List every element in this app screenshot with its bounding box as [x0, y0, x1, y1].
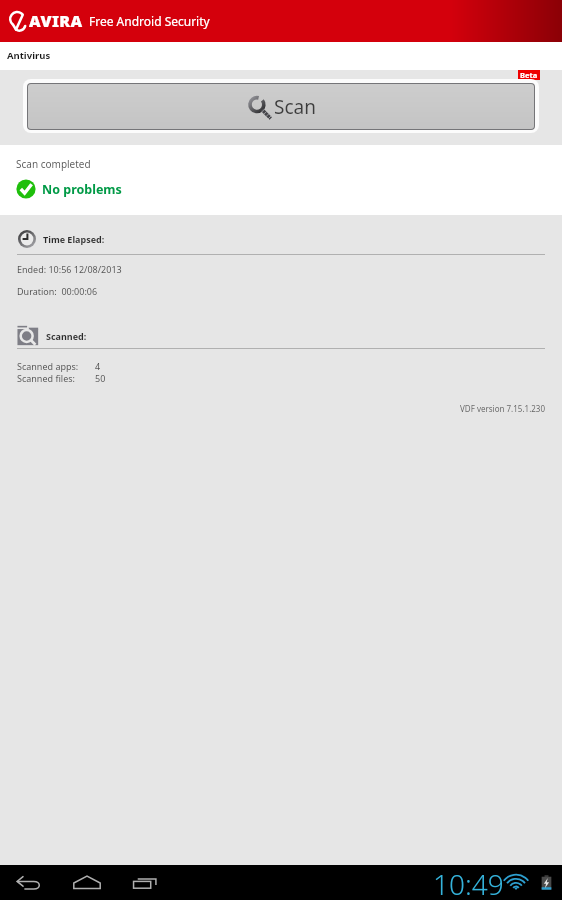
staticText: 10:49 — [433, 865, 504, 900]
staticText: 50 — [95, 372, 106, 384]
staticText: VDF version 7.15.1.230 — [0, 403, 545, 414]
staticText: Scanned: — [46, 330, 87, 342]
staticText: Scan completed — [16, 157, 91, 171]
staticText: Time Elapsed: — [43, 233, 105, 245]
staticText: Ended: 10:56 12/08/2013 — [17, 263, 122, 275]
staticText: Antivirus — [7, 49, 51, 62]
staticText: 4 — [95, 360, 101, 372]
staticText: No problems — [42, 181, 122, 198]
staticText: Free Android Security — [89, 13, 210, 29]
staticText: AVIRA — [29, 10, 83, 32]
button[interactable]: Back — [0, 865, 58, 900]
staticText: Scanned files: — [17, 372, 75, 384]
button[interactable]: Scan — [27, 83, 535, 130]
staticText: Scan — [274, 94, 316, 120]
button[interactable]: Home — [58, 865, 116, 900]
staticText: Beta — [520, 70, 538, 80]
staticText: Duration: 00:00:06 — [17, 285, 98, 297]
staticText: Scanned apps: — [17, 360, 79, 372]
button[interactable]: Recent apps — [116, 865, 174, 900]
